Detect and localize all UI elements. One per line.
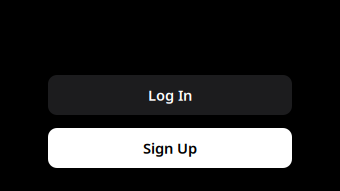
staticText: Log In (148, 85, 192, 105)
staticText: Sign Up (143, 138, 197, 158)
button[interactable]: Sign Up (48, 128, 292, 168)
button[interactable]: Log In (48, 75, 292, 115)
